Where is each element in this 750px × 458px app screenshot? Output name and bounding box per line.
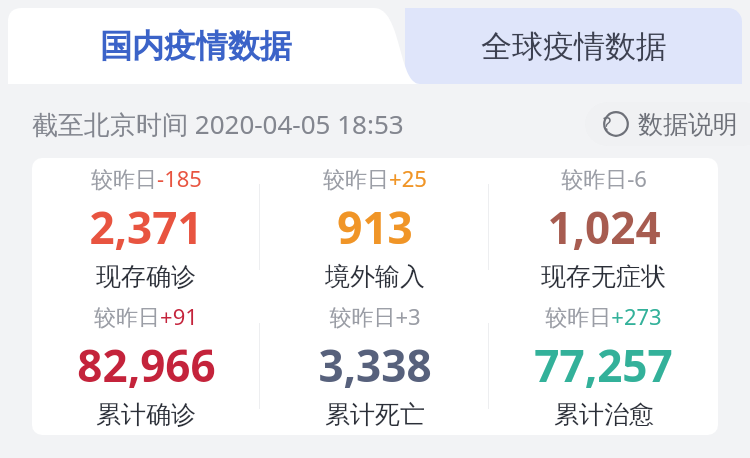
staticText: 全球疫情数据: [481, 27, 667, 66]
staticText: 较昨日-6: [561, 163, 647, 193]
button[interactable]: 较昨日+91: [32, 296, 260, 435]
button[interactable]: 较昨日-6: [489, 158, 718, 296]
staticText: 现存无症状: [541, 261, 666, 292]
staticText: 1,024: [547, 197, 661, 257]
staticText: 境外输入: [325, 261, 425, 292]
staticText: 较昨日-185: [91, 163, 202, 193]
staticText: 较昨日+273: [545, 301, 662, 331]
staticText: 现存确诊: [96, 261, 196, 292]
staticText: 2,371: [89, 197, 203, 257]
button[interactable]: 数据说明: [585, 102, 750, 146]
staticText: 较昨日+91: [94, 301, 198, 331]
button[interactable]: 国内疫情数据: [8, 8, 420, 84]
button[interactable]: 较昨日+273: [489, 296, 718, 435]
staticText: 913: [337, 197, 413, 257]
staticText: 累计治愈: [554, 399, 654, 430]
button[interactable]: 较昨日-185: [32, 158, 260, 296]
staticText: 3,338: [318, 335, 432, 395]
button[interactable]: 较昨日+3: [260, 296, 489, 435]
staticText: 较昨日+3: [329, 301, 421, 331]
staticText: 77,257: [534, 335, 673, 395]
button[interactable]: 全球疫情数据: [405, 8, 742, 84]
staticText: 数据说明: [638, 109, 738, 140]
button[interactable]: 较昨日+25: [260, 158, 489, 296]
staticText: 累计确诊: [96, 399, 196, 430]
staticText: 82,966: [77, 335, 216, 395]
staticText: 截至北京时间 2020-04-05 18:53: [32, 106, 404, 142]
staticText: 较昨日+25: [323, 163, 427, 193]
staticText: 国内疫情数据: [100, 26, 292, 66]
staticText: 累计死亡: [325, 399, 425, 430]
staticText: ?: [603, 111, 612, 137]
